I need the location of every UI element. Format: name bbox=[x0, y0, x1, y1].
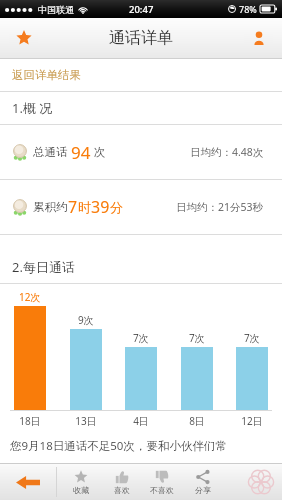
staticText: 不喜欢 bbox=[150, 485, 174, 495]
button[interactable]: 7次 bbox=[181, 331, 213, 410]
staticText: 2.每日通话 bbox=[12, 258, 75, 276]
staticText: 返回详单结果 bbox=[12, 68, 81, 82]
staticText: 收藏 bbox=[73, 485, 89, 495]
button[interactable]: 分享 bbox=[184, 470, 222, 495]
staticText: 您9月18日通话不足50次，要和小伙伴们常 bbox=[10, 438, 227, 454]
staticText: 分 bbox=[110, 199, 123, 215]
staticText: 7次 bbox=[189, 331, 205, 345]
staticText: 12次 bbox=[19, 290, 41, 304]
button[interactable]: 收藏 bbox=[9, 25, 38, 51]
staticText: 12日 bbox=[241, 414, 263, 428]
staticText: 累积约 bbox=[33, 200, 68, 214]
staticText: 喜欢 bbox=[114, 485, 130, 495]
staticText: 8日 bbox=[189, 414, 205, 428]
staticText: 通话详单 bbox=[109, 28, 173, 48]
button[interactable]: 7次 bbox=[125, 331, 157, 410]
staticText: 中国联通 bbox=[38, 4, 74, 15]
staticText: 39 bbox=[91, 196, 110, 218]
staticText: 日均约：21分53秒 bbox=[176, 200, 264, 214]
staticText: 20:47 bbox=[129, 3, 154, 16]
staticText: 分享 bbox=[195, 485, 211, 495]
staticText: 4日 bbox=[133, 414, 149, 428]
staticText: 7次 bbox=[133, 331, 149, 345]
button[interactable]: 返回 bbox=[0, 464, 56, 500]
staticText: 1.概 况 bbox=[12, 99, 53, 117]
button[interactable]: 喜欢 bbox=[103, 470, 141, 495]
staticText: 9次 bbox=[78, 313, 94, 327]
staticText: 78% bbox=[239, 3, 257, 15]
button[interactable]: 7次 bbox=[236, 331, 268, 410]
button[interactable]: 12次 bbox=[14, 290, 46, 410]
button[interactable]: 收藏 bbox=[62, 470, 100, 495]
button[interactable]: 返回详单结果 bbox=[0, 59, 282, 91]
button[interactable]: 不喜欢 bbox=[143, 470, 181, 495]
button[interactable]: 用户 bbox=[244, 25, 273, 51]
staticText: 18日 bbox=[19, 414, 41, 428]
staticText: 94 bbox=[71, 141, 91, 164]
staticText: 13日 bbox=[75, 414, 97, 428]
staticText: 时 bbox=[78, 199, 91, 215]
staticText: 日均约：4.48次 bbox=[190, 145, 264, 159]
staticText: 次 bbox=[94, 145, 106, 159]
button[interactable]: 9次 bbox=[70, 313, 102, 410]
staticText: 7次 bbox=[244, 331, 260, 345]
staticText: 总通话 bbox=[33, 145, 68, 159]
staticText: 7 bbox=[68, 196, 78, 218]
